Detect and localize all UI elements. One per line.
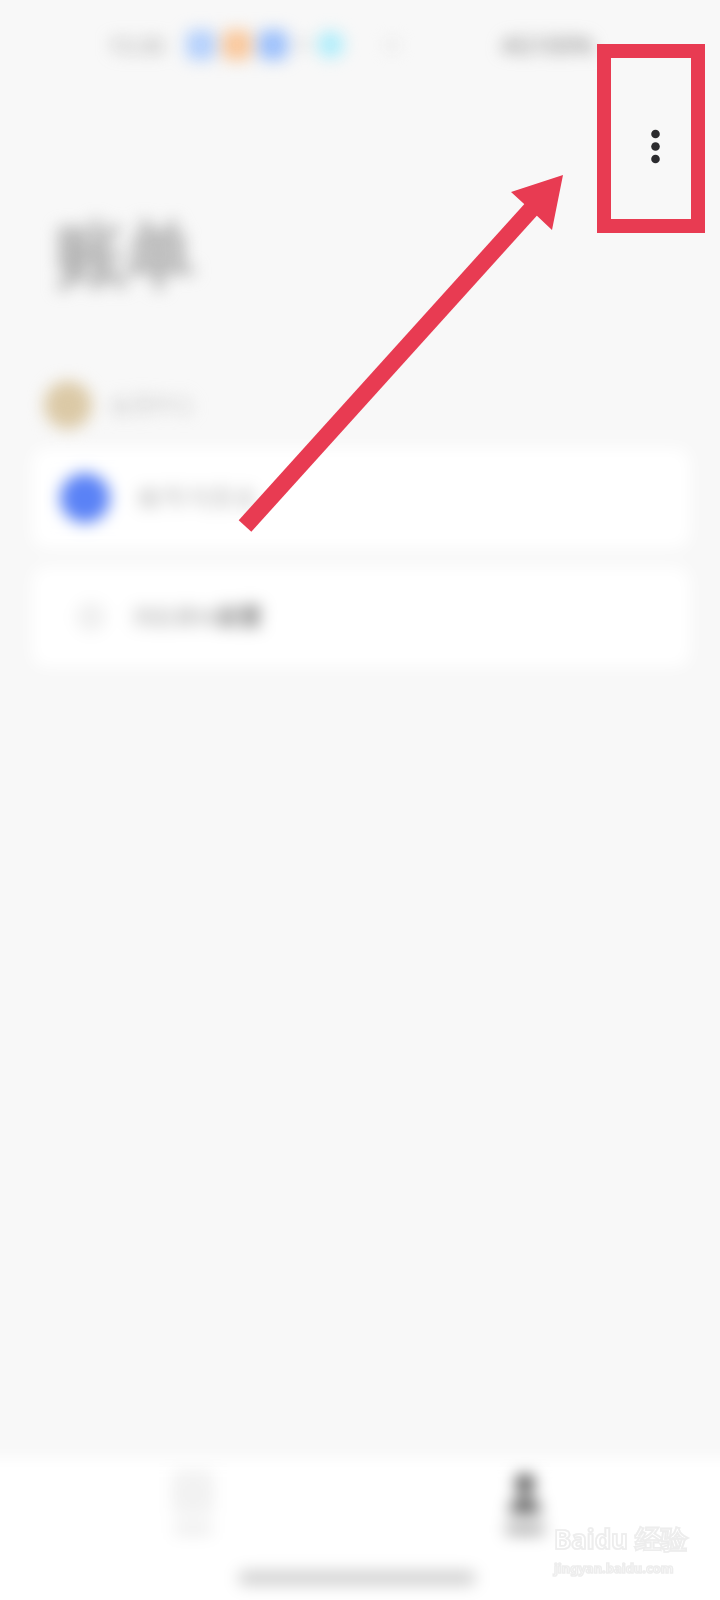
staticText: Baidu 经验 [554,1521,687,1557]
button[interactable]: Profile [499,1470,551,1535]
button[interactable]: 消息通知 [32,567,690,667]
staticText: jingyan.baidu.com [554,1559,674,1577]
staticText: 消息通知 [132,604,216,630]
button[interactable]: 账号与安全 [32,448,690,548]
staticText: 15:30 [108,30,165,60]
staticText: 账号与安全 [138,483,258,513]
staticText: 4G100% [501,28,594,61]
button[interactable]: Home [167,1470,219,1535]
staticText: 账单 [56,212,192,303]
staticText: 设置 [216,603,262,632]
button[interactable]: More options [620,60,692,216]
button[interactable]: 会员中心 [0,377,720,433]
